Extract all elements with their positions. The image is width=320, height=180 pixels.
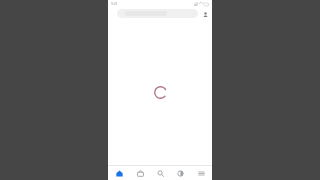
button[interactable] bbox=[117, 9, 198, 18]
button[interactable]: Contrast bbox=[171, 166, 189, 180]
button[interactable]: Search bbox=[151, 166, 169, 180]
button[interactable]: Home bbox=[110, 166, 128, 180]
button[interactable]: Shopping bbox=[131, 166, 149, 180]
button[interactable]: Account bbox=[201, 10, 209, 18]
button[interactable]: Menu bbox=[192, 166, 210, 180]
staticText: 9:41 bbox=[111, 1, 118, 6]
